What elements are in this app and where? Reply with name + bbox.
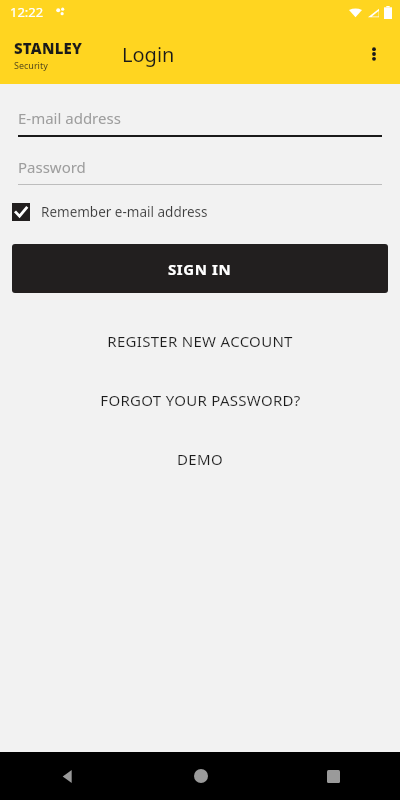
button[interactable]: Password [18,157,382,185]
button[interactable]: E-mail address [18,108,382,137]
button[interactable]: SIGN IN [12,244,388,293]
staticText: REGISTER NEW ACCOUNT [107,331,293,351]
staticText: Security [14,59,48,71]
staticText: STANLEY [14,38,83,58]
staticText: DEMO [177,449,223,469]
button[interactable]: Remember e-mail address [12,199,208,225]
staticText: E-mail address [18,108,121,128]
staticText: Remember e-mail address [41,203,208,221]
button[interactable]: Home [134,752,267,800]
button[interactable]: More options [352,32,396,76]
button[interactable]: Back [0,752,134,800]
staticText: Password [18,157,86,177]
staticText: Login [122,41,175,68]
staticText: SIGN IN [168,259,232,279]
button[interactable]: Recent apps [267,752,400,800]
button[interactable]: DEMO [0,446,400,472]
staticText: FORGOT YOUR PASSWORD? [100,390,301,410]
button[interactable]: REGISTER NEW ACCOUNT [0,328,400,354]
button[interactable]: FORGOT YOUR PASSWORD? [0,387,400,413]
staticText: 12:22 [10,3,44,21]
